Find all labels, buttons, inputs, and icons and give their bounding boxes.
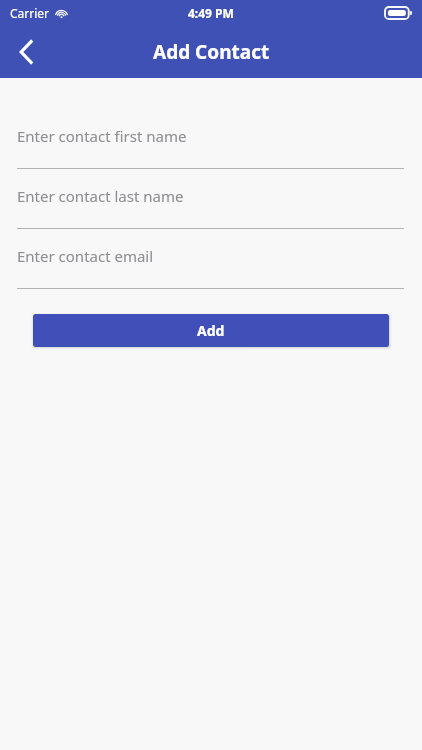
button[interactable]: Enter contact email [0,229,422,289]
staticText: Add Contact [153,39,270,65]
staticText: Enter contact first name [17,126,187,146]
button[interactable]: Enter contact last name [0,169,422,229]
staticText: Carrier [10,5,50,21]
staticText: Enter contact email [17,246,154,266]
staticText: Add [197,321,225,340]
button[interactable]: Add [33,314,389,347]
staticText: Enter contact last name [17,186,184,206]
button[interactable]: Enter contact first name [0,109,422,169]
staticText: 4:49 PM [188,5,234,21]
button[interactable]: Back [0,26,52,78]
